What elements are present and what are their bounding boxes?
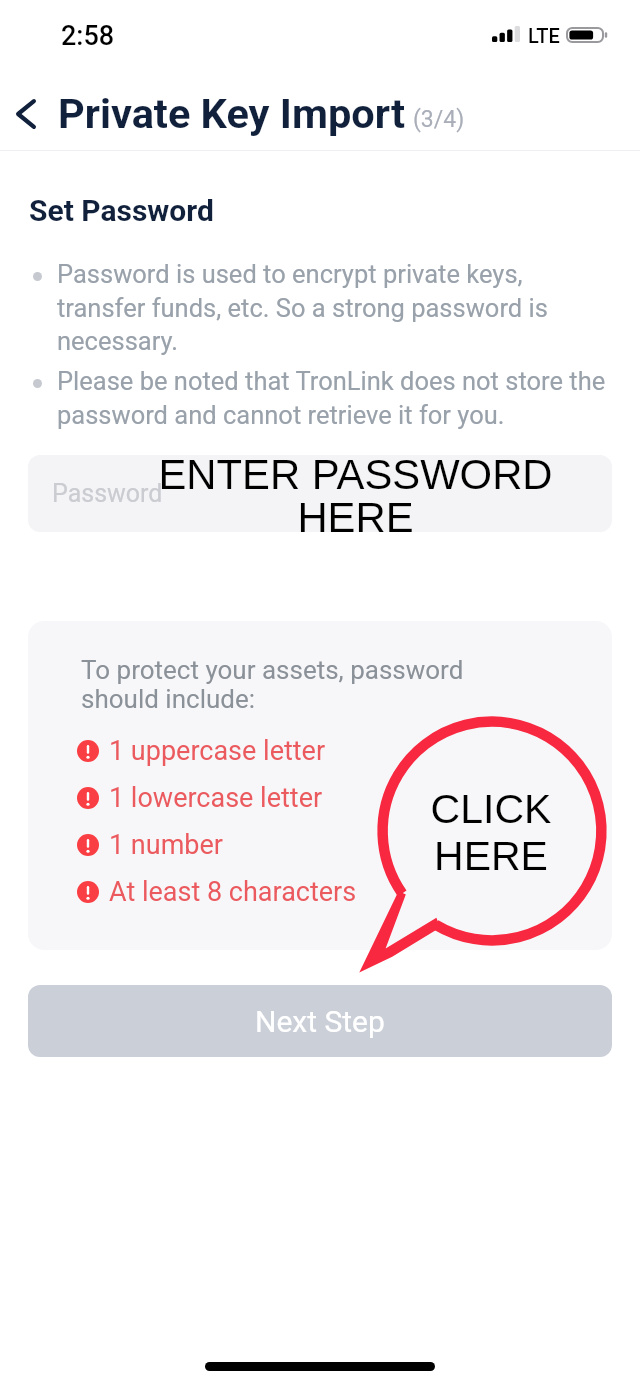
staticText: Password bbox=[52, 479, 163, 508]
staticText: 1 lowercase letter bbox=[109, 782, 323, 814]
staticText: Password is used to encrypt private keys… bbox=[57, 259, 612, 356]
staticText: At least 8 characters bbox=[109, 876, 357, 908]
button[interactable]: Back bbox=[3, 91, 49, 137]
staticText: Set Password bbox=[29, 193, 214, 228]
staticText: Next Step bbox=[255, 1004, 385, 1039]
staticText: (3/4) bbox=[413, 106, 465, 133]
staticText: Private Key Import bbox=[58, 89, 405, 138]
staticText: 2:58 bbox=[61, 20, 115, 52]
staticText: CLICK HERE bbox=[396, 786, 586, 878]
staticText: LTE bbox=[528, 24, 560, 47]
staticText: To protect your assets, password should … bbox=[81, 655, 464, 714]
staticText: ENTER PASSWORD HERE bbox=[154, 451, 557, 541]
staticText: Please be noted that TronLink does not s… bbox=[57, 366, 612, 430]
staticText: 1 number bbox=[109, 829, 223, 861]
button[interactable]: Next Step bbox=[28, 985, 612, 1057]
button[interactable]: Password bbox=[28, 455, 612, 532]
staticText: 1 uppercase letter bbox=[109, 735, 326, 767]
